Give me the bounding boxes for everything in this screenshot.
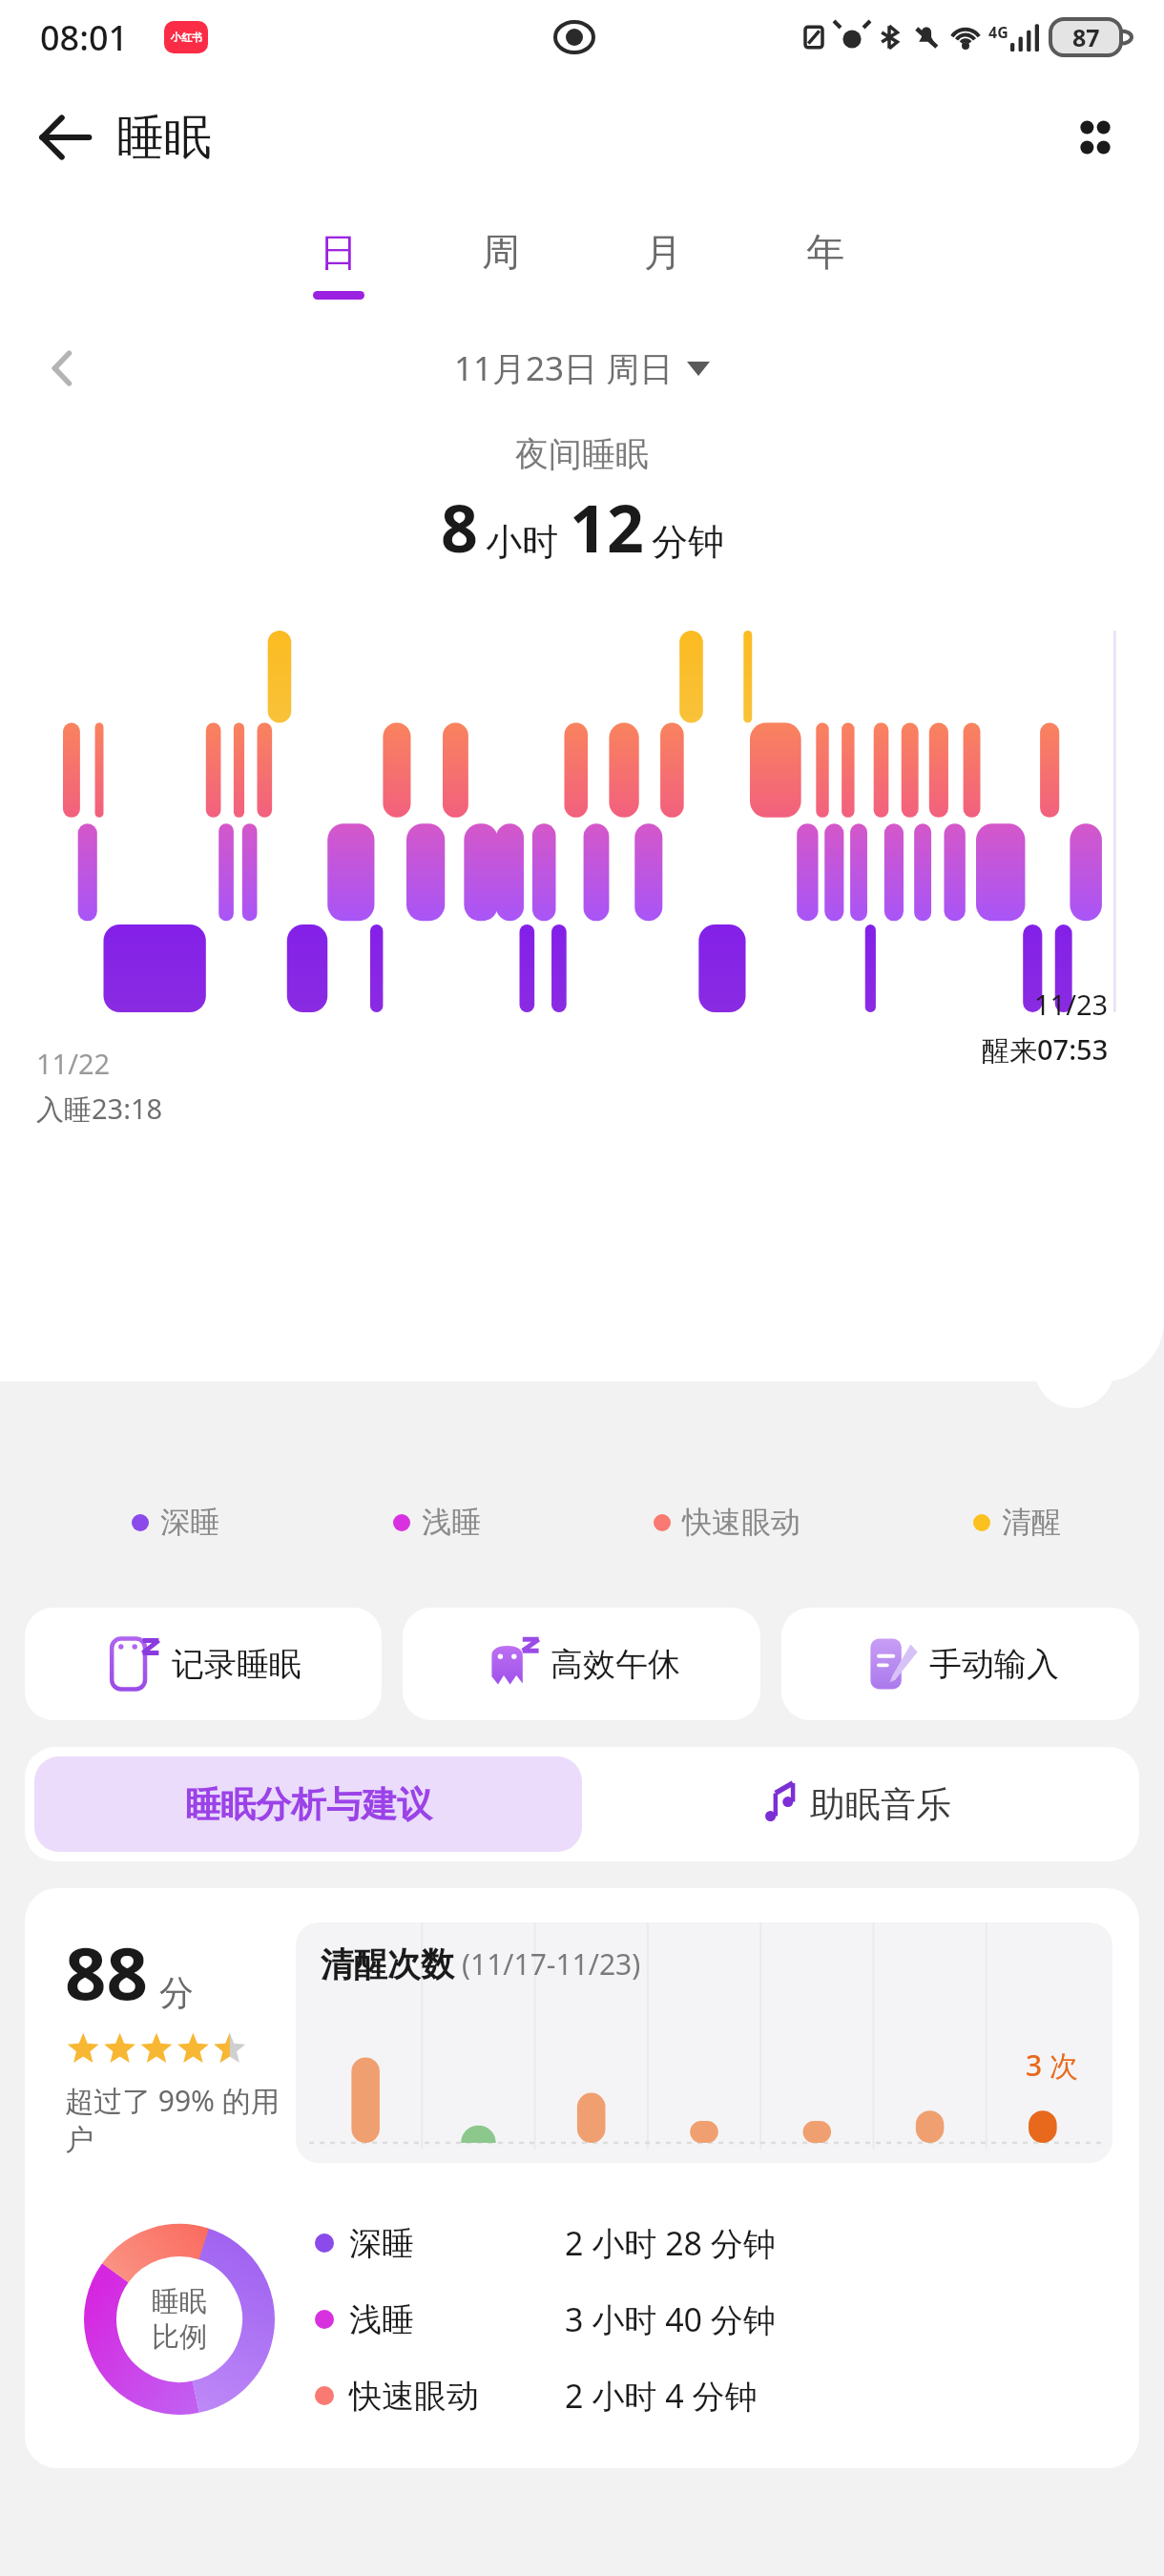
button[interactable]: Back — [25, 97, 105, 177]
staticText: 87 — [1072, 21, 1100, 53]
staticText: 08:01 — [40, 14, 129, 61]
staticText: 小红书 — [171, 31, 202, 44]
button[interactable]: 日 — [286, 228, 391, 300]
button[interactable]: Previous day — [27, 332, 99, 405]
staticText: 浅睡 — [422, 1504, 481, 1541]
staticText: 清醒次数 — [321, 1943, 454, 1985]
staticText: 手动输入 — [929, 1644, 1059, 1685]
button[interactable]: 年 — [773, 228, 878, 300]
staticText: 3 次 — [1026, 2046, 1078, 2085]
staticText: 入睡23:18 — [36, 1090, 163, 1128]
button[interactable]: 高效午休 — [403, 1608, 760, 1720]
button[interactable]: 记录睡眠 — [25, 1608, 382, 1720]
button[interactable]: 月 — [611, 228, 716, 300]
staticText: 分 — [159, 1971, 194, 2014]
staticText: 超过了 99% 的用户 — [65, 2081, 296, 2158]
staticText: 2 小时 4 分钟 — [565, 2374, 758, 2418]
staticText: 高效午休 — [551, 1644, 680, 1685]
staticText: 周 — [448, 228, 553, 276]
staticText: 深睡 — [349, 2223, 565, 2264]
staticText: 记录睡眠 — [172, 1644, 301, 1685]
staticText: 月 — [611, 228, 716, 276]
button[interactable]: 手动输入 — [781, 1608, 1139, 1720]
button[interactable]: 11月23日 周日 — [454, 345, 710, 391]
staticText: 深睡 — [160, 1504, 219, 1541]
staticText: 比例 — [152, 2319, 207, 2355]
staticText: 睡眠 — [152, 2284, 207, 2319]
button[interactable]: More options — [1051, 93, 1139, 181]
staticText: 分钟 — [652, 519, 724, 565]
staticText: 醒来07:53 — [982, 1030, 1109, 1069]
staticText: 8 — [441, 483, 478, 571]
button[interactable]: 助眠音乐 — [582, 1756, 1130, 1852]
staticText: 12 — [570, 483, 644, 571]
staticText: 浅睡 — [349, 2299, 565, 2340]
staticText: 88 — [65, 1922, 148, 2022]
staticText: 11月23日 周日 — [454, 345, 674, 391]
staticText: 快速眼动 — [349, 2376, 565, 2417]
button[interactable]: 周 — [448, 228, 553, 300]
staticText: 助眠音乐 — [810, 1782, 951, 1827]
staticText: 日 — [286, 228, 391, 276]
staticText: 11/22 — [36, 1045, 111, 1082]
staticText: 清醒 — [1002, 1504, 1061, 1541]
staticText: 11/23 — [1034, 986, 1109, 1023]
staticText: 年 — [773, 228, 878, 276]
button[interactable]: Expand sleep chart — [1034, 1328, 1114, 1408]
staticText: 小时 — [486, 519, 558, 565]
staticText: 夜间睡眠 — [0, 433, 1164, 475]
staticText: 睡眠 — [116, 108, 212, 168]
staticText: 2 小时 28 分钟 — [565, 2221, 776, 2265]
staticText: 4G — [988, 22, 1008, 43]
staticText: 3 小时 40 分钟 — [565, 2297, 776, 2341]
staticText: 快速眼动 — [682, 1504, 800, 1541]
button[interactable]: 睡眠分析与建议 — [34, 1756, 582, 1852]
staticText: 睡眠分析与建议 — [185, 1782, 432, 1827]
staticText: (11/17-11/23) — [462, 1944, 641, 1984]
